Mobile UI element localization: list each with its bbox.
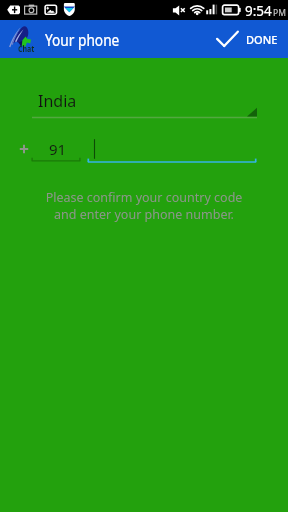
staticText: PM [273, 7, 286, 19]
staticText: 91 [49, 139, 67, 159]
staticText: Please confirm your country code and ent… [0, 189, 288, 222]
button[interactable]: 91 [31, 134, 81, 164]
staticText: India [38, 90, 77, 112]
staticText: Your phone [45, 29, 119, 51]
button[interactable]: DONE [210, 20, 288, 58]
staticText: DONE [246, 32, 278, 48]
other: App logo [3, 18, 39, 54]
button[interactable]: India [31, 88, 257, 120]
staticText: Chat [18, 42, 34, 54]
button[interactable] [87, 134, 257, 165]
staticText: 9:54 [245, 2, 272, 20]
